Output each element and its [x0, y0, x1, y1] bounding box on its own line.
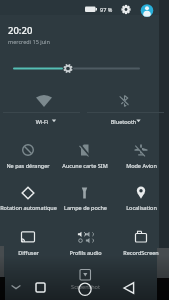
- button[interactable]: [62, 264, 107, 292]
- button[interactable]: [2, 182, 55, 218]
- staticText: Diffuser: [18, 249, 39, 256]
- staticText: Lampe de poche: [64, 204, 107, 211]
- button[interactable]: [2, 140, 55, 176]
- button[interactable]: [28, 278, 52, 300]
- button[interactable]: [2, 226, 55, 262]
- button[interactable]: [58, 140, 111, 176]
- staticText: Rotation automatique: [0, 204, 57, 211]
- button[interactable]: [58, 182, 111, 218]
- button[interactable]: [139, 3, 155, 19]
- button[interactable]: [114, 182, 167, 218]
- button[interactable]: [8, 280, 24, 296]
- staticText: Screenshot: [71, 283, 100, 290]
- staticText: Aucune carte SIM: [62, 162, 108, 169]
- button[interactable]: [118, 2, 134, 18]
- button[interactable]: [8, 92, 78, 128]
- staticText: Profils audio: [69, 249, 102, 256]
- staticText: Localisation: [126, 204, 157, 211]
- button[interactable]: [114, 140, 167, 176]
- staticText: Bluetooth: [109, 118, 138, 125]
- staticText: Wi-Fi: [34, 118, 50, 125]
- button[interactable]: [10, 60, 150, 77]
- staticText: 97 %: [100, 6, 113, 13]
- button[interactable]: [114, 226, 167, 262]
- button[interactable]: [117, 278, 141, 300]
- staticText: RecordScreen: [123, 249, 159, 256]
- button[interactable]: [73, 278, 97, 300]
- button[interactable]: [58, 226, 111, 262]
- button[interactable]: [88, 92, 158, 128]
- staticText: Ne pas déranger: [6, 162, 50, 169]
- staticText: Mode Avion: [126, 162, 157, 169]
- staticText: 20:20: [8, 24, 33, 37]
- staticText: mercredi 15 juin: [8, 38, 50, 45]
